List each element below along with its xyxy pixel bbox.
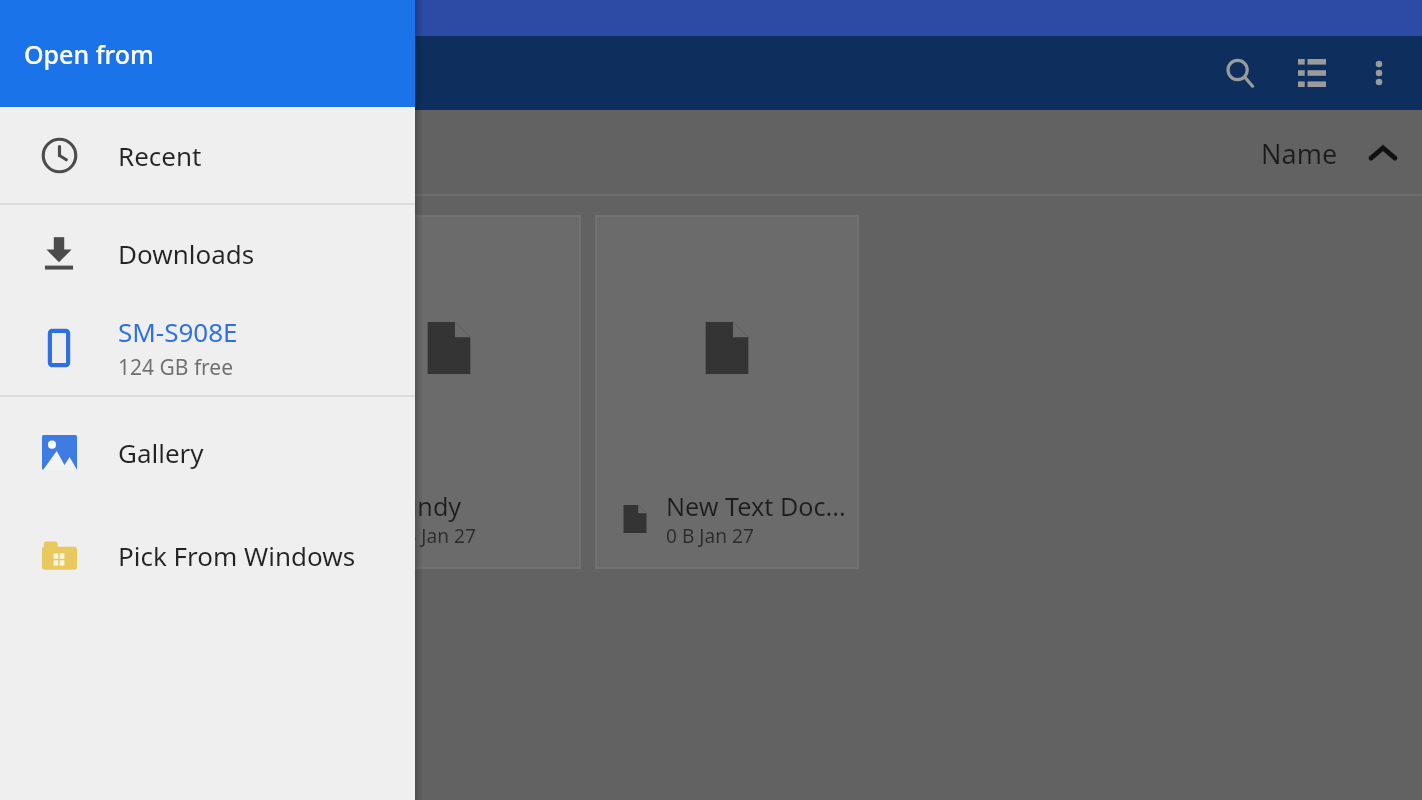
staticText: Sundy [388, 489, 462, 523]
button[interactable]: Downloads [0, 205, 415, 301]
staticText: Pick From Windows [118, 538, 356, 573]
button[interactable]: Gallery [0, 397, 415, 507]
staticText: 0 B Jan 27 [666, 523, 754, 549]
staticText: 124 GB free [118, 353, 234, 382]
button[interactable]: Search [1204, 37, 1276, 109]
staticText: 0 B Jan 27 [388, 523, 476, 549]
button[interactable]: Sundy [318, 216, 580, 568]
button[interactable]: Recent [0, 107, 415, 203]
staticText: Recent [118, 138, 202, 173]
button[interactable]: Name [1237, 121, 1422, 186]
staticText: Name [1261, 135, 1338, 172]
button[interactable]: Pick From Windows [0, 507, 415, 603]
button[interactable]: SM-S908E [0, 301, 415, 395]
staticText: Downloads [118, 236, 255, 271]
staticText: New Text Doc... [666, 489, 846, 523]
staticText: Gallery [118, 435, 204, 470]
button[interactable]: New Text Doc... [596, 216, 858, 568]
button[interactable]: More options [1348, 42, 1410, 104]
staticText: SM-S908E [118, 314, 238, 349]
button[interactable]: Switch to list view [1276, 37, 1348, 109]
staticText: Open from [24, 37, 154, 71]
